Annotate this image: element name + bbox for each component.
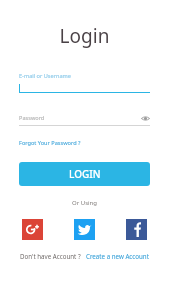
button[interactable]: E-mail or Username (19, 72, 150, 93)
staticText: Login (0, 23, 169, 49)
staticText: Or Using (0, 199, 169, 207)
button[interactable]: Sign in with Google (22, 219, 43, 240)
staticText: E-mail or Username (19, 72, 71, 80)
button[interactable]: Forgot Your Password ? (19, 139, 81, 147)
staticText: Forgot Your Password ? (19, 139, 81, 147)
staticText: LOGIN (69, 167, 101, 181)
button[interactable]: LOGIN (19, 162, 150, 186)
button[interactable]: Sign in with Facebook (126, 219, 147, 240)
button[interactable]: Password (19, 113, 150, 126)
staticText: Don't have Account ? (20, 252, 81, 260)
staticText: Create a new Account (86, 252, 149, 260)
button[interactable]: Show password (140, 113, 150, 123)
button[interactable]: Create a new Account (86, 252, 149, 260)
staticText: Password (19, 114, 140, 122)
button[interactable]: Sign in with Twitter (74, 219, 95, 240)
